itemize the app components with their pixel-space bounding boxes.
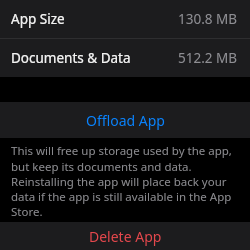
button[interactable]: Documents & Data bbox=[0, 39, 250, 77]
button[interactable]: App Size bbox=[0, 0, 250, 38]
staticText: Delete App bbox=[89, 227, 162, 246]
staticText: This will free up storage used by the ap… bbox=[11, 143, 240, 219]
staticText: 512.2 MB bbox=[178, 49, 238, 67]
button[interactable]: Delete App bbox=[0, 222, 250, 250]
staticText: 130.8 MB bbox=[178, 10, 238, 28]
staticText: App Size bbox=[11, 10, 65, 28]
staticText: Offload App bbox=[86, 111, 165, 130]
button[interactable]: Offload App bbox=[0, 102, 250, 138]
staticText: Documents & Data bbox=[11, 49, 131, 67]
